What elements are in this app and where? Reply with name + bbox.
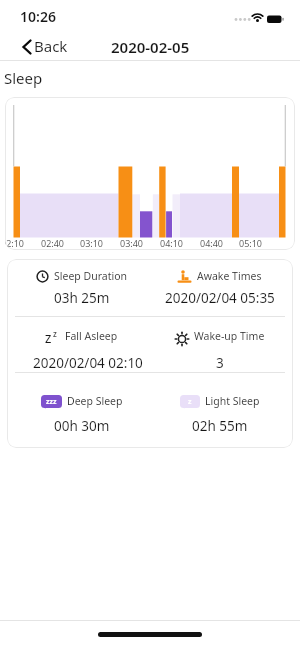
- button[interactable]: Sleep Duration: [10, 269, 153, 283]
- staticText: Z: [45, 331, 52, 345]
- staticText: Sleep: [4, 68, 43, 88]
- button[interactable]: z: [148, 394, 291, 408]
- staticText: Deep Sleep: [67, 394, 123, 408]
- button[interactable]: zzz: [10, 394, 153, 408]
- staticText: 2020/02/04 02:10: [33, 354, 143, 372]
- staticText: Sleep Duration: [54, 269, 128, 283]
- staticText: Wake-up Time: [194, 329, 265, 343]
- staticText: 03:10: [80, 237, 104, 249]
- staticText: 2020/02/04 05:35: [165, 289, 275, 307]
- staticText: 04:10: [160, 237, 184, 249]
- staticText: Fall Asleep: [65, 329, 118, 343]
- button[interactable]: Back: [20, 34, 70, 58]
- staticText: z: [53, 328, 57, 339]
- staticText: 3: [216, 354, 224, 372]
- staticText: 04:40: [200, 237, 224, 249]
- button[interactable]: Wake-up Time: [148, 329, 291, 343]
- button[interactable]: Awake Times: [148, 269, 291, 283]
- staticText: Awake Times: [197, 269, 262, 283]
- staticText: 2020-02-05: [111, 37, 190, 57]
- staticText: 00h 30m: [54, 417, 110, 435]
- staticText: 03h 25m: [54, 289, 110, 307]
- staticText: Back: [34, 36, 68, 56]
- staticText: 10:26: [20, 7, 56, 26]
- staticText: 02:40: [41, 237, 65, 249]
- staticText: 03:40: [120, 237, 144, 249]
- staticText: Light Sleep: [205, 394, 260, 408]
- staticText: 05:10: [239, 237, 263, 249]
- button[interactable]: Z: [10, 329, 153, 343]
- staticText: zzz: [46, 397, 57, 407]
- staticText: 02:10: [5, 237, 25, 249]
- staticText: z: [188, 397, 192, 407]
- staticText: 02h 55m: [192, 417, 248, 435]
